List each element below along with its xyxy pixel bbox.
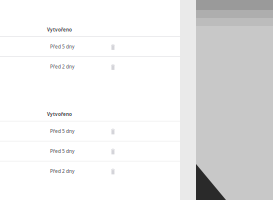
button[interactable]: Před 5 dny: [0, 37, 180, 56]
button[interactable]: Před 5 dny: [0, 141, 180, 161]
staticText: Před 2 dny: [50, 168, 74, 174]
staticText: Před 2 dny: [50, 63, 74, 70]
staticText: Před 5 dny: [50, 128, 74, 134]
button[interactable]: Před 2 dny: [0, 57, 180, 76]
staticText: Před 5 dny: [50, 148, 74, 154]
button[interactable]: Před 2 dny: [0, 161, 180, 181]
staticText: Před 5 dny: [50, 43, 74, 50]
button[interactable]: Před 5 dny: [0, 121, 180, 141]
staticText: Vytvořeno: [47, 26, 72, 33]
staticText: Vytvořeno: [47, 111, 72, 117]
